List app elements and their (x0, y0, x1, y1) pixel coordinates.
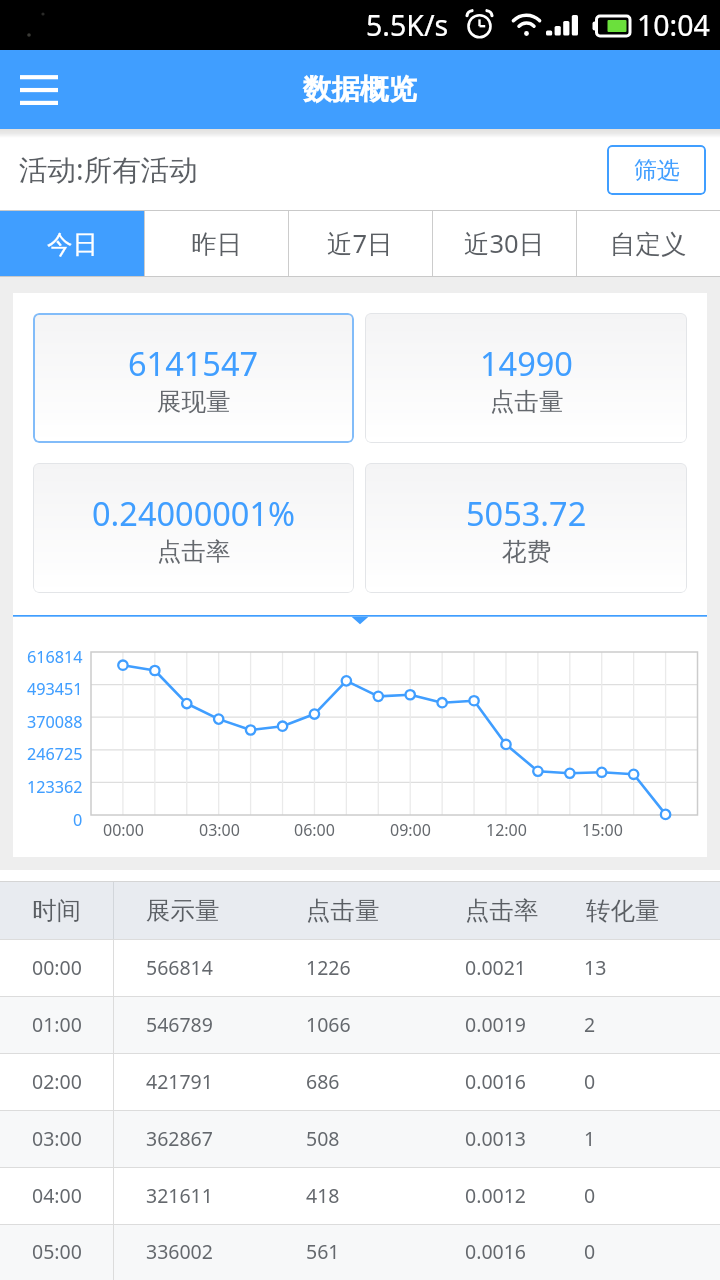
staticText: 336002 (146, 1238, 213, 1265)
staticText: 展现量 (157, 386, 231, 417)
button[interactable]: 5053.72 (365, 463, 687, 593)
button[interactable]: Open navigation menu (0, 50, 78, 129)
staticText: 566814 (146, 954, 213, 981)
staticText: 0.0021 (465, 954, 526, 981)
staticText: 03:00 (32, 1125, 82, 1152)
staticText: 点击率 (157, 536, 231, 567)
staticText: 14990 (480, 341, 573, 385)
staticText: 0.24000001% (92, 491, 296, 535)
staticText: 0 (584, 1068, 596, 1095)
staticText: 0.0013 (465, 1125, 526, 1152)
button[interactable]: 近7日 (288, 211, 432, 276)
staticText: 5053.72 (466, 491, 587, 535)
button[interactable]: 自定义 (576, 211, 720, 276)
button[interactable]: 6141547 (33, 313, 354, 443)
staticText: 04:00 (32, 1182, 82, 1209)
staticText: 493451 (27, 678, 83, 698)
staticText: 13 (584, 954, 607, 981)
staticText: 418 (306, 1182, 340, 1209)
staticText: 561 (306, 1238, 340, 1265)
staticText: 546789 (146, 1011, 213, 1038)
staticText: 0 (73, 809, 83, 829)
staticText: 246725 (27, 743, 83, 763)
staticText: 362867 (146, 1125, 213, 1152)
button[interactable]: 14990 (365, 313, 687, 443)
staticText: 00:00 (103, 819, 144, 839)
staticText: 01:00 (32, 1011, 82, 1038)
staticText: 点击量 (490, 386, 564, 417)
staticText: 10:04 (637, 6, 710, 45)
staticText: 近7日 (327, 226, 393, 261)
staticText: 03:00 (199, 819, 240, 839)
staticText: 508 (306, 1125, 340, 1152)
staticText: 时间 (32, 895, 81, 926)
staticText: 1 (584, 1125, 596, 1152)
button[interactable]: 05:00 (0, 1225, 720, 1280)
staticText: 0 (584, 1238, 596, 1265)
staticText: 00:00 (32, 954, 82, 981)
staticText: 近30日 (464, 226, 545, 261)
button[interactable]: 近30日 (432, 211, 576, 276)
button[interactable]: 03:00 (0, 1111, 720, 1167)
staticText: 今日 (47, 228, 98, 260)
staticText: 筛选 (634, 156, 680, 185)
staticText: 370088 (27, 711, 83, 731)
staticText: 686 (306, 1068, 340, 1095)
button[interactable]: 0.24000001% (33, 463, 354, 593)
staticText: 05:00 (32, 1238, 82, 1265)
staticText: 展示量 (146, 895, 220, 926)
staticText: 活动:所有活动 (19, 150, 198, 189)
staticText: 06:00 (294, 819, 335, 839)
staticText: 12:00 (486, 819, 527, 839)
staticText: 0 (584, 1182, 596, 1209)
button[interactable]: 02:00 (0, 1054, 720, 1110)
staticText: 1226 (306, 954, 351, 981)
staticText: 1066 (306, 1011, 351, 1038)
staticText: 点击量 (306, 895, 380, 926)
staticText: 0.0016 (465, 1068, 526, 1095)
staticText: 15:00 (582, 819, 623, 839)
button[interactable]: 筛选 (607, 145, 706, 195)
staticText: 09:00 (390, 819, 431, 839)
staticText: 昨日 (191, 228, 242, 260)
button[interactable]: 昨日 (144, 211, 288, 276)
staticText: 0.0016 (465, 1238, 526, 1265)
staticText: 转化量 (586, 895, 660, 926)
staticText: 616814 (27, 646, 83, 666)
staticText: 0.0019 (465, 1011, 526, 1038)
staticText: 自定义 (610, 228, 687, 260)
staticText: 点击率 (465, 895, 539, 926)
staticText: 花费 (502, 536, 551, 567)
button[interactable]: 今日 (0, 211, 144, 276)
staticText: 0.0012 (465, 1182, 526, 1209)
staticText: 123362 (27, 776, 83, 796)
button[interactable]: 00:00 (0, 940, 720, 996)
staticText: 02:00 (32, 1068, 82, 1095)
staticText: 数据概览 (303, 72, 417, 108)
staticText: 321611 (146, 1182, 213, 1209)
button[interactable]: 01:00 (0, 997, 720, 1053)
staticText: 2 (584, 1011, 596, 1038)
staticText: 421791 (146, 1068, 213, 1095)
staticText: 6141547 (128, 341, 259, 385)
button[interactable]: 04:00 (0, 1168, 720, 1224)
staticText: 5.5K/s (366, 6, 449, 45)
